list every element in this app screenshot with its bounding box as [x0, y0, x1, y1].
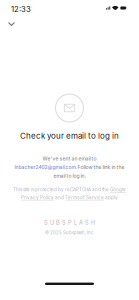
button[interactable]: lnbacher2402@gmail.com — [14, 164, 75, 170]
staticText: and — [54, 195, 65, 200]
button[interactable]: Close — [3, 17, 20, 31]
staticText: © 2025 Subsplash, Inc. — [45, 230, 94, 235]
staticText: S U B S P L A S H — [44, 219, 95, 226]
staticText: We've sent an email to — [42, 156, 96, 162]
staticText: This site is protected by reCAPTCHA and … — [13, 187, 110, 192]
button[interactable]: Google — [110, 187, 126, 192]
staticText: Privacy Policy — [21, 195, 54, 200]
staticText: email to log in. — [53, 173, 85, 179]
staticText: apply. — [104, 195, 118, 200]
staticText: Terms of Service — [65, 195, 104, 200]
button[interactable]: Privacy Policy — [21, 195, 54, 200]
staticText: 12:33 — [11, 4, 31, 14]
staticText: Google — [110, 187, 126, 192]
staticText: lnbacher2402@gmail.com — [14, 164, 75, 170]
staticText: Check your email to log in — [20, 131, 119, 141]
staticText: . Follow the link in the — [75, 164, 124, 170]
button[interactable]: Terms of Service — [65, 195, 104, 200]
